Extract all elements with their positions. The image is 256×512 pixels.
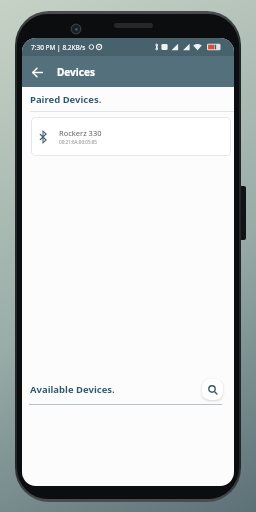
button[interactable]: [202, 379, 223, 400]
staticText: Paired Devices.: [30, 93, 102, 106]
button[interactable]: Rockerz 330: [31, 117, 231, 156]
button[interactable]: [29, 64, 45, 80]
staticText: Devices: [57, 65, 95, 79]
staticText: 00:21:6A:00:05:85: [59, 139, 97, 145]
staticText: Available Devices.: [30, 383, 115, 396]
staticText: 7:30 PM | 8.2KB/s: [31, 43, 86, 52]
staticText: Rockerz 330: [59, 128, 102, 138]
